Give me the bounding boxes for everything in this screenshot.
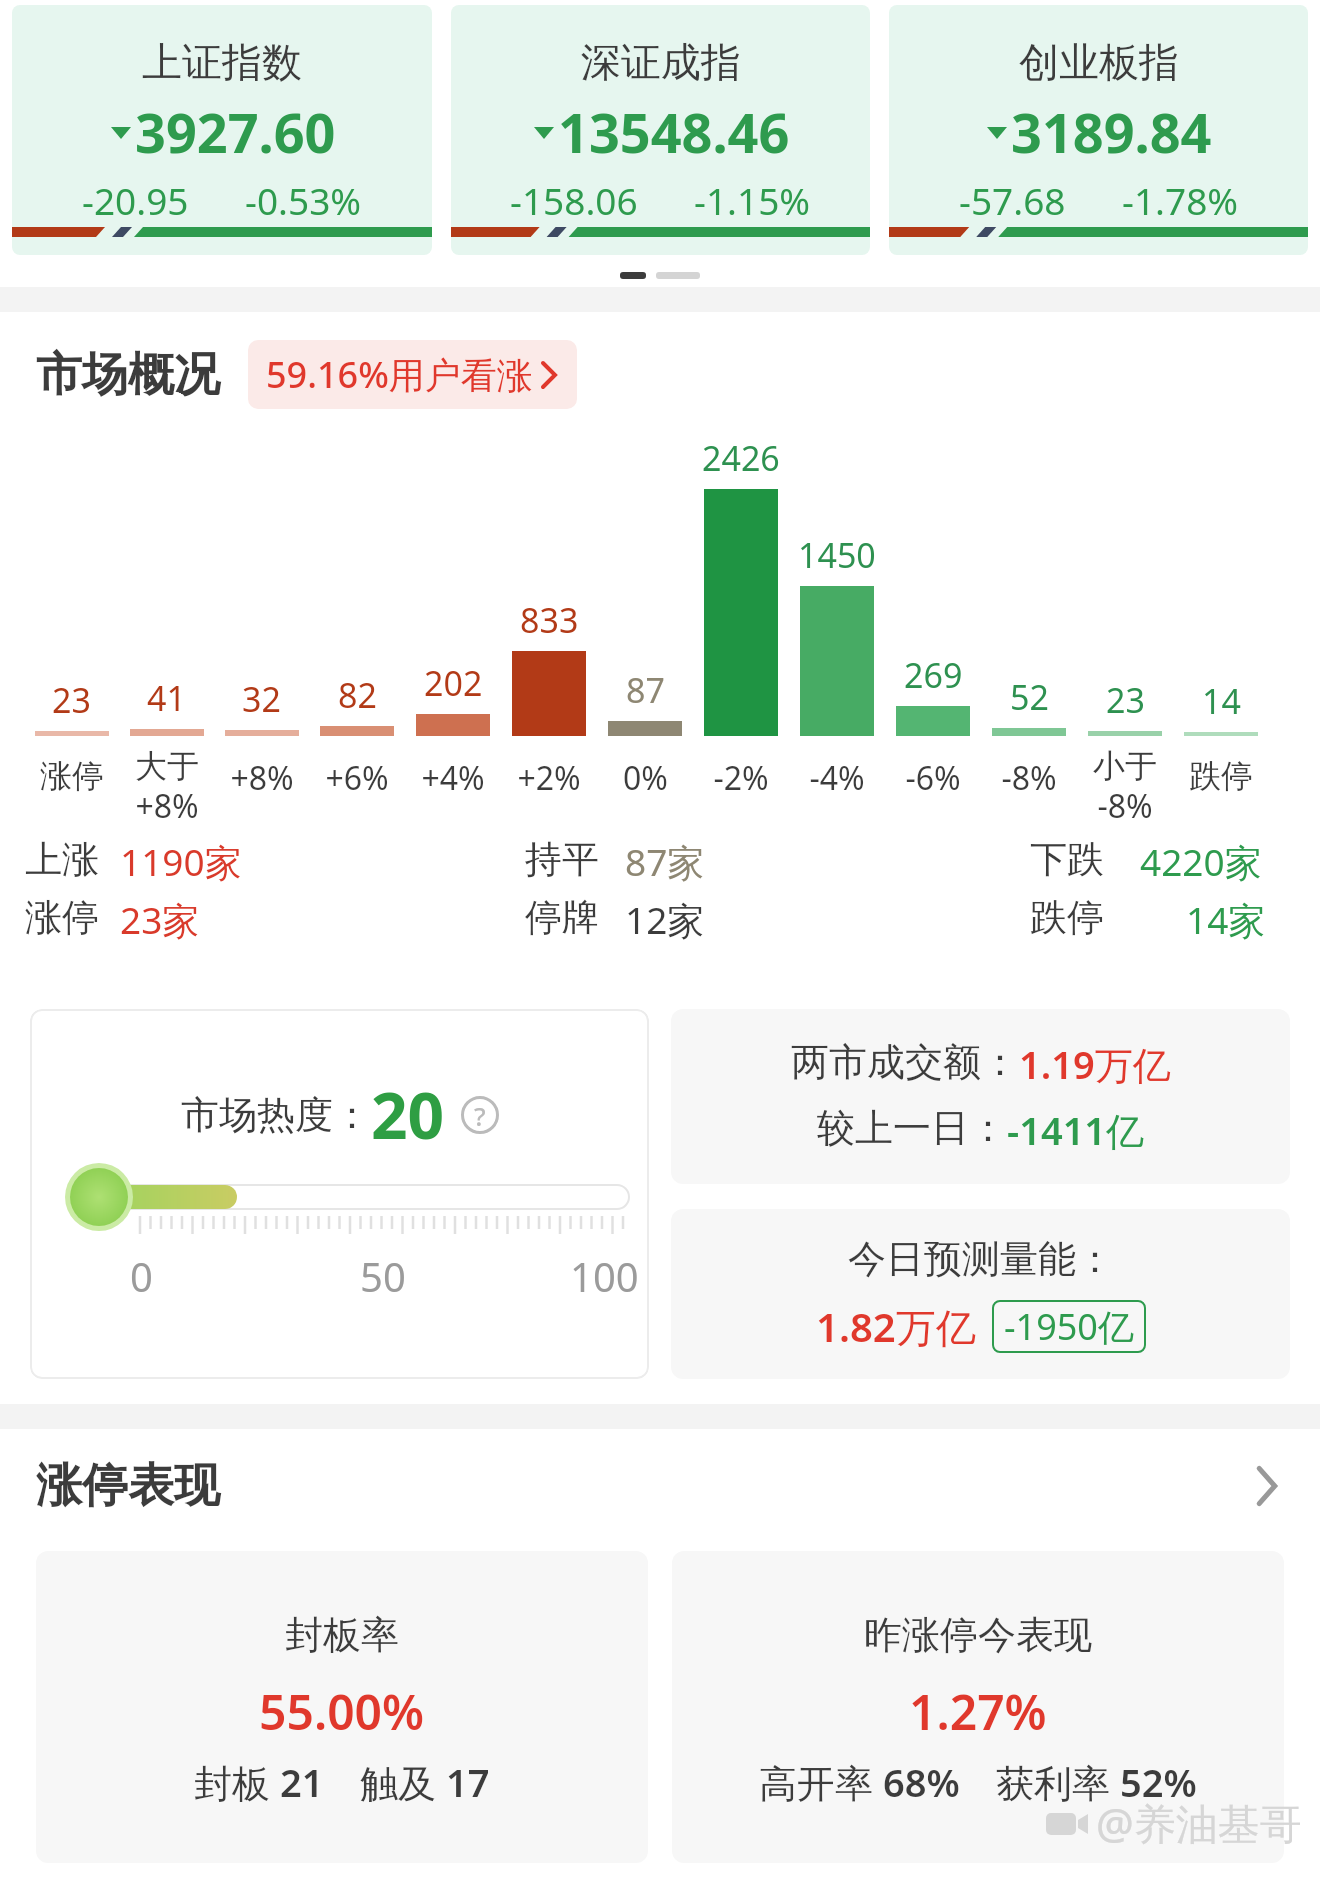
staticText: +4%	[421, 756, 485, 800]
staticText: 12家	[625, 894, 705, 945]
staticText: 下跌	[1030, 836, 1104, 883]
staticText: 3927.60	[135, 95, 336, 169]
staticText: 87家	[625, 836, 705, 887]
button[interactable]: 今日预测量能：	[671, 1209, 1290, 1379]
staticText: 52	[1010, 674, 1049, 720]
staticText: 202	[424, 660, 483, 706]
staticText: 14	[1202, 678, 1241, 724]
staticText: 市场概况	[36, 346, 220, 404]
staticText: 涨停	[25, 894, 99, 941]
staticText: 跌停	[1030, 894, 1104, 941]
staticText: 上证指数	[142, 37, 302, 87]
staticText: 涨停	[40, 756, 104, 796]
staticText: 高开率	[759, 1756, 883, 1808]
button[interactable]: 涨停表现	[0, 1457, 1320, 1515]
staticText: +2%	[517, 756, 581, 800]
staticText: 封板	[194, 1756, 280, 1808]
staticText: 55.00%	[259, 1679, 425, 1744]
staticText: -4%	[809, 756, 865, 800]
staticText: 较上一日：	[817, 1104, 1007, 1152]
button[interactable]: 两市成交额：	[671, 1009, 1290, 1184]
staticText: 1.27%	[909, 1679, 1047, 1744]
staticText: 1450	[798, 532, 876, 578]
button[interactable]: 深证成指	[451, 5, 870, 255]
staticText: 持平	[525, 836, 599, 883]
staticText: +8%	[230, 756, 294, 800]
staticText: -158.06	[510, 175, 638, 225]
staticText: 获利率	[996, 1756, 1120, 1808]
staticText: 0	[130, 1249, 153, 1303]
staticText: 3189.84	[1011, 95, 1212, 169]
staticText: 跌停	[1189, 756, 1253, 796]
staticText: 59.16%用户看涨	[266, 350, 533, 399]
staticText: 创业板指	[1019, 37, 1179, 87]
staticText: 32	[242, 676, 281, 722]
staticText: -1.78%	[1122, 175, 1239, 225]
button[interactable]: 封板率	[36, 1551, 648, 1863]
staticText: -2%	[713, 756, 769, 800]
staticText: 100	[570, 1249, 639, 1303]
button[interactable]: 上证指数	[12, 5, 432, 255]
button[interactable]: 59.16%用户看涨	[248, 340, 577, 409]
staticText: 1190家	[120, 836, 242, 887]
staticText: @养油基哥	[1096, 1794, 1302, 1851]
staticText: -20.95	[82, 175, 189, 225]
staticText: 1.82万亿	[816, 1299, 976, 1354]
staticText: 小于 -8%	[1093, 746, 1157, 828]
staticText: 68%	[883, 1756, 960, 1808]
staticText: -0.53%	[245, 175, 362, 225]
button[interactable]: 昨涨停今表现	[672, 1551, 1284, 1863]
staticText: 0%	[623, 756, 668, 800]
staticText: -1950亿	[1004, 1302, 1134, 1351]
staticText: 触及	[360, 1756, 446, 1808]
staticText: 今日预测量能：	[848, 1235, 1114, 1283]
staticText: 深证成指	[581, 37, 741, 87]
staticText: 87	[626, 667, 665, 713]
staticText: 涨停表现	[36, 1457, 220, 1515]
button[interactable]: 创业板指	[889, 5, 1308, 255]
staticText: 50	[360, 1249, 406, 1303]
staticText: 封板率	[285, 1611, 399, 1659]
staticText: -6%	[905, 756, 961, 800]
staticText: +6%	[325, 756, 389, 800]
staticText: 市场热度：	[181, 1091, 371, 1139]
button[interactable]: 市场热度：	[30, 1009, 649, 1379]
staticText: -8%	[1001, 756, 1057, 800]
staticText: 41	[147, 675, 186, 721]
staticText: 停牌	[525, 894, 599, 941]
staticText: 21	[280, 1756, 324, 1808]
staticText: 52%	[1120, 1756, 1197, 1808]
staticText: -1.15%	[694, 175, 811, 225]
staticText: 13548.46	[558, 95, 790, 169]
staticText: -57.68	[959, 175, 1066, 225]
staticText: 2426	[702, 435, 780, 481]
staticText: 82	[338, 672, 377, 718]
staticText: 20	[371, 1071, 445, 1158]
staticText: 17	[446, 1756, 490, 1808]
staticText: 大于 +8%	[135, 746, 199, 828]
staticText: 昨涨停今表现	[864, 1611, 1092, 1659]
staticText: 269	[904, 652, 963, 698]
staticText: -1411亿	[1007, 1104, 1145, 1156]
staticText: 4220家	[1140, 836, 1262, 887]
staticText: 23	[1106, 677, 1145, 723]
staticText: 23家	[120, 894, 200, 945]
staticText: 1.19万亿	[1019, 1038, 1171, 1090]
staticText: 上涨	[25, 836, 99, 883]
staticText: 23	[52, 677, 91, 723]
staticText: 14家	[1186, 894, 1266, 945]
staticText: 两市成交额：	[791, 1038, 1019, 1086]
staticText: 833	[520, 597, 579, 643]
staticText: ?	[474, 1098, 486, 1133]
